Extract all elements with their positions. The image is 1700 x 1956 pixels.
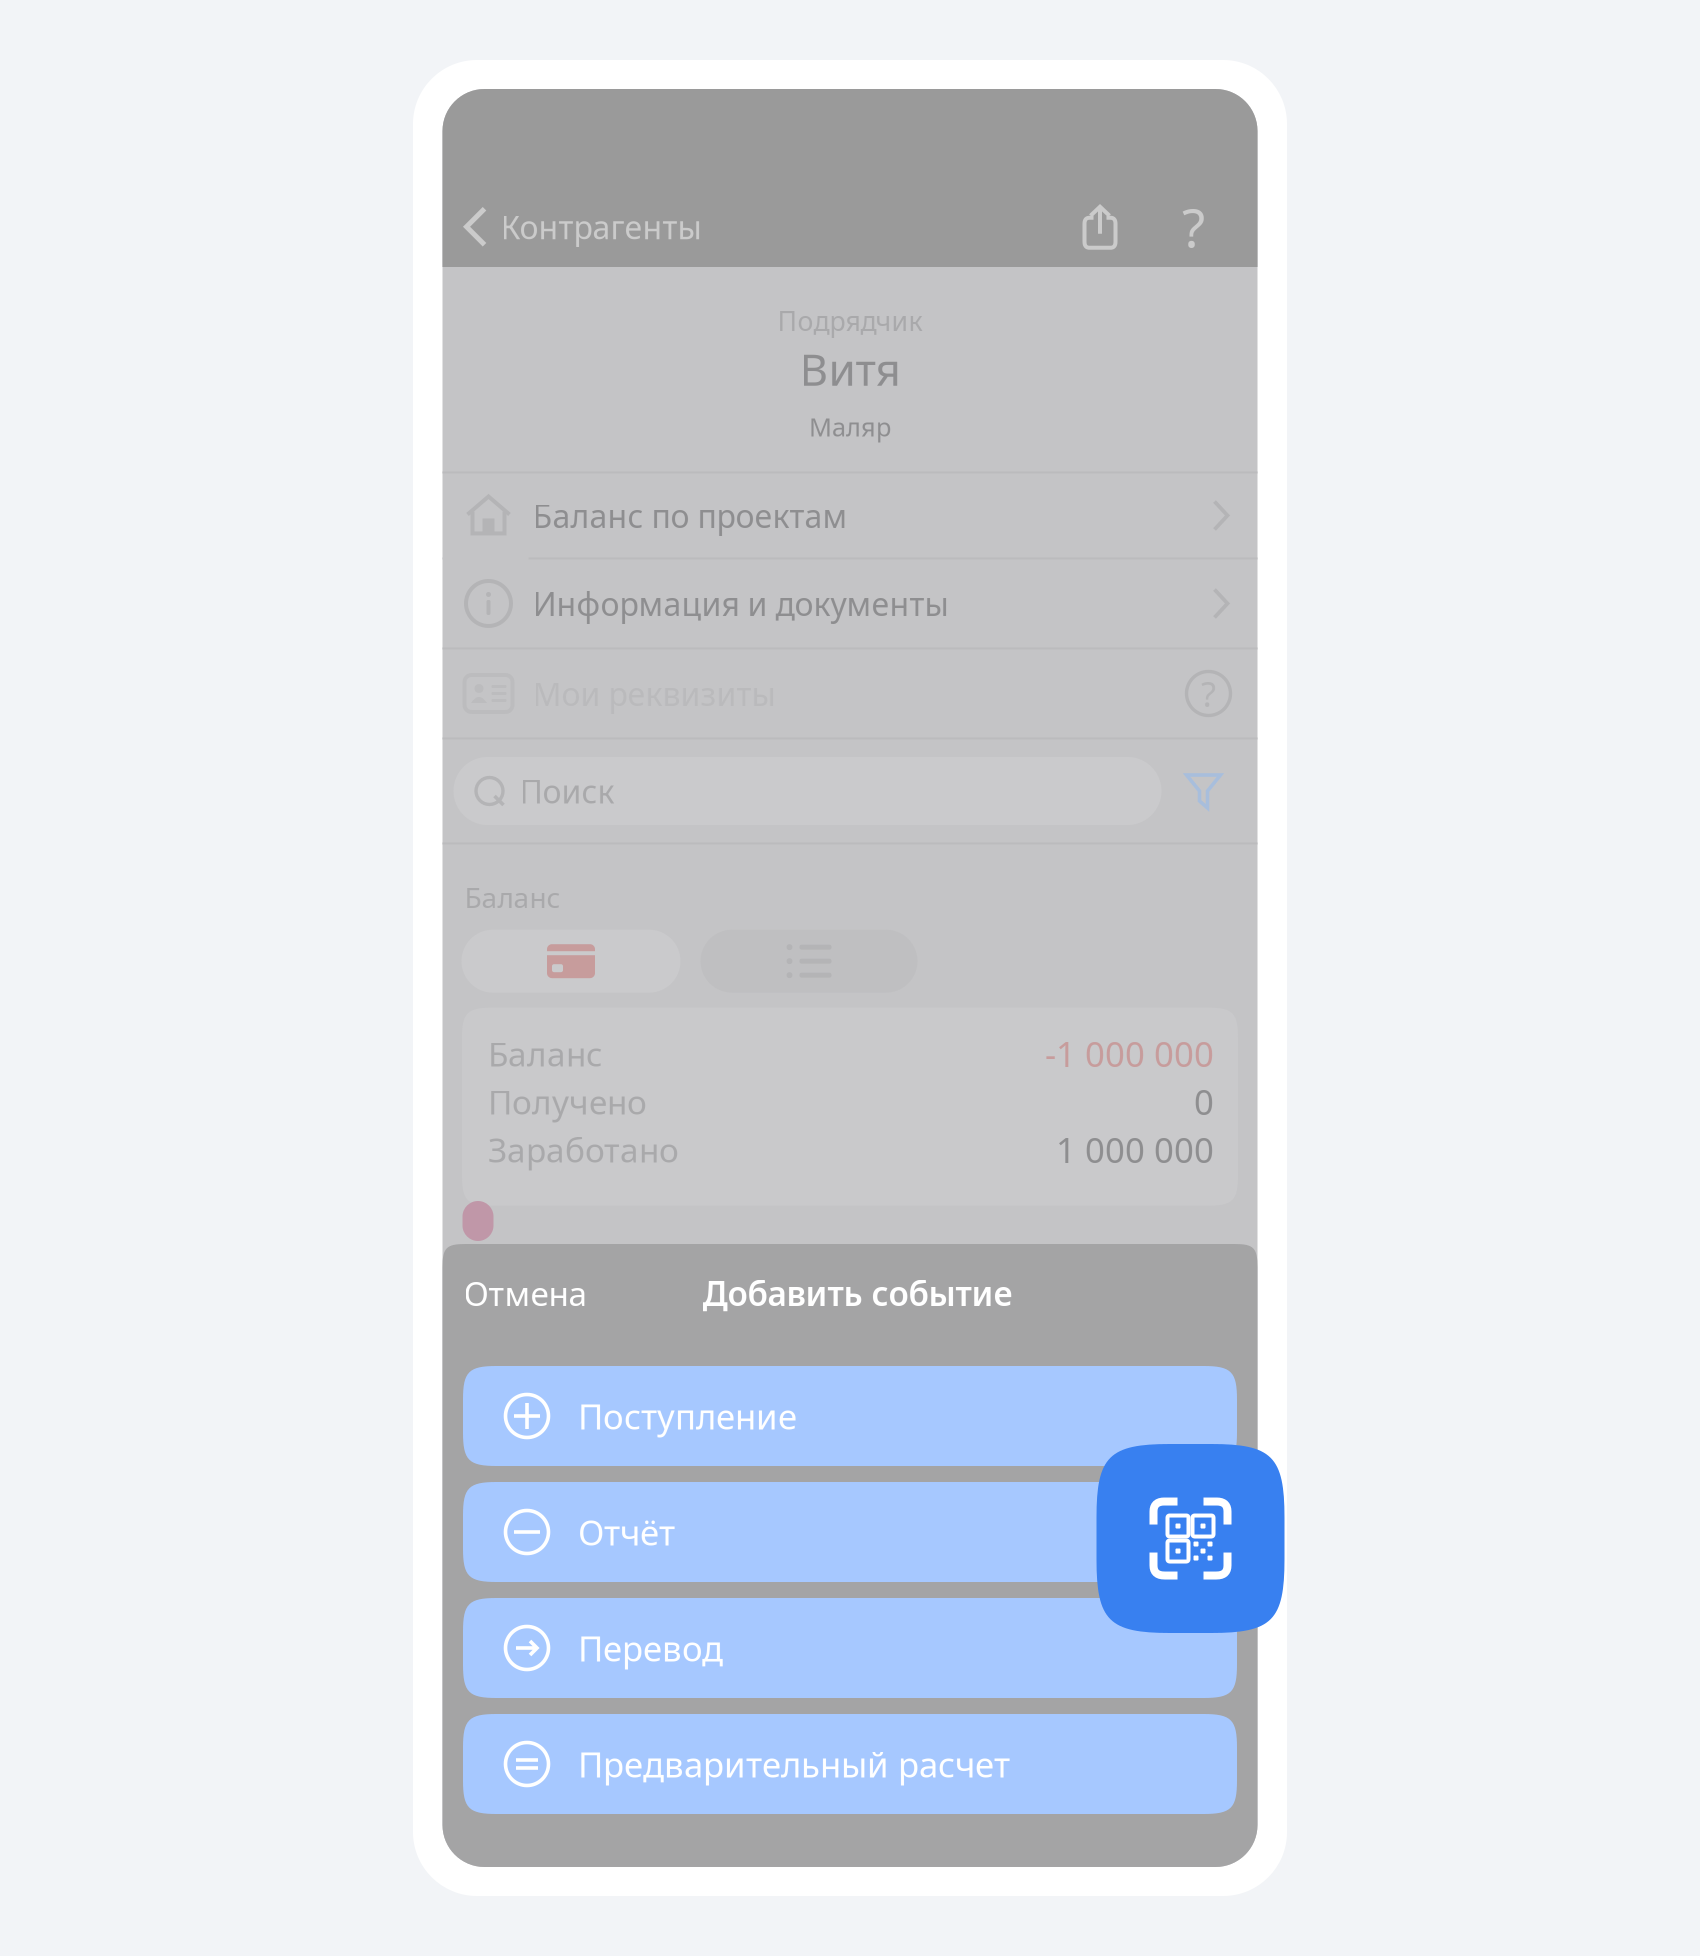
- button[interactable]: Поиск: [453, 757, 1161, 825]
- staticText: Предварительный расчет: [578, 1741, 1010, 1787]
- staticText: 1 000 000: [1056, 1127, 1214, 1173]
- button[interactable]: Информация и документы: [442, 559, 1257, 647]
- staticText: ?: [1182, 191, 1205, 262]
- button[interactable]: Предварительный расчет: [463, 1714, 1237, 1814]
- staticText: Баланс: [488, 1031, 602, 1076]
- button[interactable]: Отмена: [463, 1262, 702, 1324]
- staticText: Мои реквизиты: [532, 672, 775, 715]
- staticText: ?: [1201, 670, 1216, 716]
- staticText: Поступление: [578, 1393, 797, 1439]
- button[interactable]: Справка: [1168, 204, 1218, 250]
- staticText: Контрагенты: [500, 205, 701, 248]
- staticText: Поиск: [519, 770, 614, 812]
- staticText: Витя: [799, 339, 900, 398]
- staticText: -1 000 000: [1045, 1031, 1214, 1077]
- button[interactable]: Сканировать QR-код: [1096, 1444, 1284, 1633]
- button[interactable]: Карта: [461, 930, 680, 993]
- button[interactable]: Поделиться: [1081, 204, 1118, 250]
- staticText: Подрядчик: [777, 303, 922, 338]
- button[interactable]: Поступление: [463, 1366, 1237, 1466]
- staticText: Отчёт: [578, 1509, 675, 1555]
- staticText: Перевод: [578, 1625, 723, 1671]
- staticText: Отмена: [463, 1271, 587, 1315]
- button[interactable]: Баланс по проектам: [442, 473, 1257, 557]
- staticText: Заработано: [488, 1127, 679, 1172]
- button[interactable]: Перевод: [463, 1598, 1237, 1698]
- staticText: Баланс: [464, 878, 560, 916]
- staticText: Получено: [488, 1079, 647, 1124]
- button[interactable]: Отчёт: [463, 1482, 1237, 1582]
- staticText: 0: [1194, 1079, 1214, 1125]
- button[interactable]: Контрагенты: [462, 199, 701, 254]
- staticText: Баланс по проектам: [532, 494, 847, 537]
- staticText: Информация и документы: [532, 582, 948, 625]
- button[interactable]: Фильтр: [1183, 770, 1223, 812]
- staticText: Маляр: [809, 410, 891, 443]
- staticText: Добавить событие: [702, 1271, 1012, 1315]
